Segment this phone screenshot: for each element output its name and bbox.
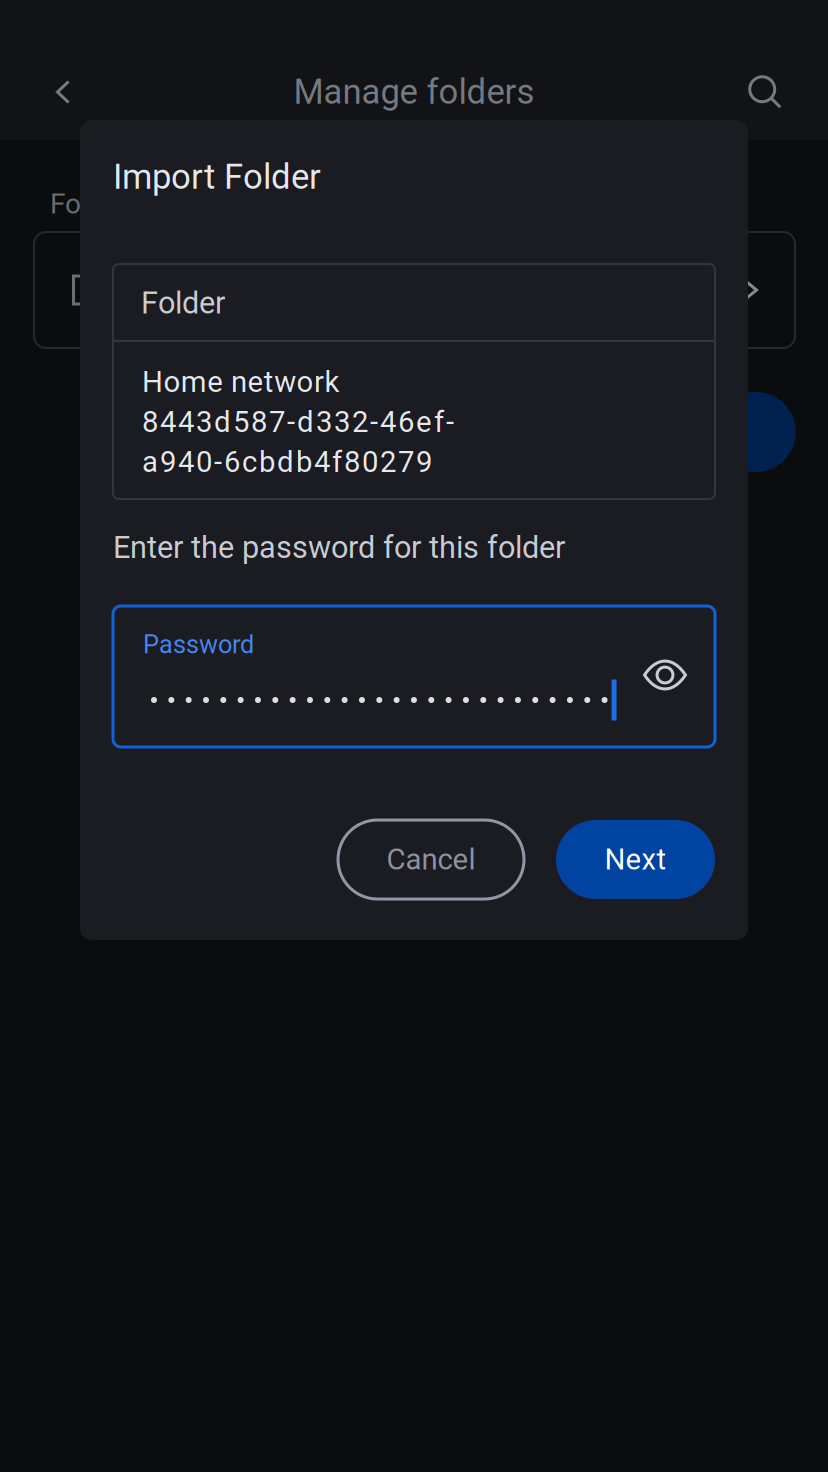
button[interactable]: Search xyxy=(702,44,828,140)
staticText: Password xyxy=(143,630,254,659)
staticText: Enter the password for this folder xyxy=(113,529,565,565)
staticText: a940-6cbdb4f80279 xyxy=(142,445,432,479)
button[interactable]: Add folder xyxy=(716,392,796,472)
staticText: Cancel xyxy=(386,842,475,877)
staticText: Home network xyxy=(142,365,339,399)
staticText: Folder xyxy=(141,285,225,321)
staticText: Folders xyxy=(50,188,142,220)
button[interactable]: Show password xyxy=(633,649,697,701)
button[interactable]: Next xyxy=(556,820,715,899)
staticText: Next xyxy=(604,842,666,877)
staticText: 8443d587-d332-46ef- xyxy=(142,405,454,439)
button[interactable]: Back xyxy=(0,44,126,140)
staticText: Import Folder xyxy=(113,157,321,197)
button[interactable]: Cancel xyxy=(338,820,524,899)
staticText: Manage folders xyxy=(293,72,534,112)
button[interactable] xyxy=(34,232,795,348)
